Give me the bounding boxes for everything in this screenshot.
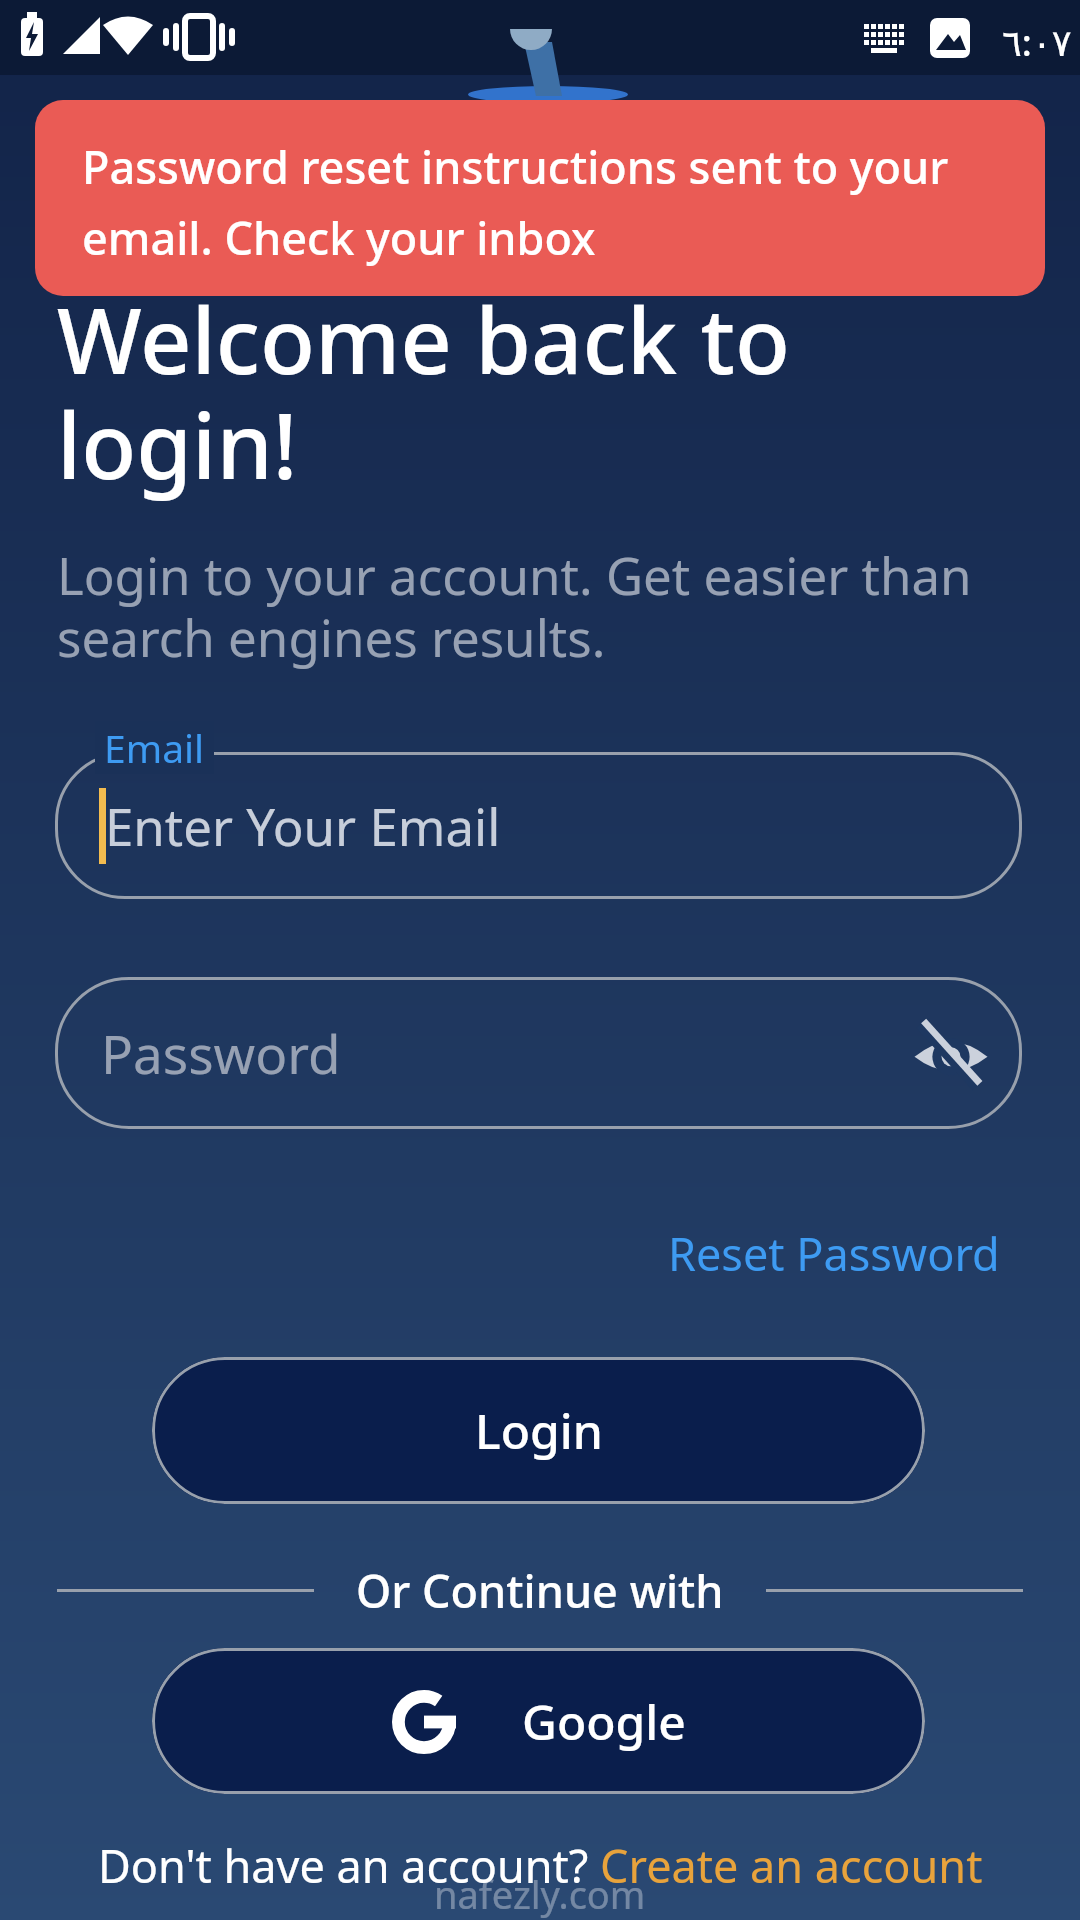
button[interactable] [913,1015,989,1091]
staticText: Password reset instructions sent to your [82,136,949,197]
staticText: Or Continue with [356,1560,724,1621]
staticText: Google [522,1689,686,1754]
staticText: ٦:٠٧ [1002,16,1072,66]
staticText: Login to your account. Get easier than s… [57,540,972,672]
staticText: email. Check your inbox [82,207,596,268]
staticText: Password [101,1017,341,1089]
button[interactable]: Enter Your Email [55,752,1022,899]
button[interactable]: Password [55,977,1022,1129]
staticText: Welcome back to login! [57,278,790,505]
button[interactable]: Don't have an account? Create an account [98,1835,983,1896]
button[interactable]: Password reset instructions sent to your [35,100,1045,296]
staticText: nafezly.com [434,1868,646,1920]
staticText: Enter Your Email [105,791,501,860]
button[interactable]: Google [152,1648,925,1794]
staticText: Email [104,721,205,774]
button[interactable]: Reset Password [668,1223,1000,1284]
button[interactable]: Login [152,1357,925,1504]
staticText: Login [475,1398,603,1463]
